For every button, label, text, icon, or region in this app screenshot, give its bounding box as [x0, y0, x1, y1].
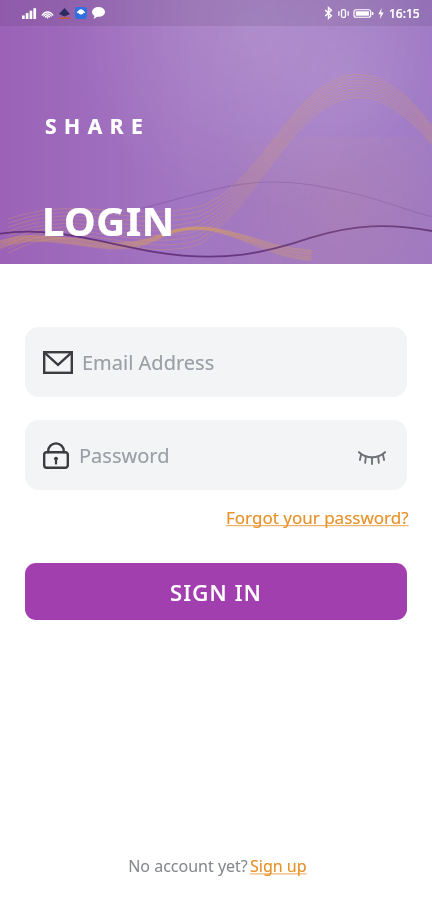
- button[interactable]: Sign up: [250, 855, 307, 877]
- staticText: Password: [79, 442, 170, 469]
- staticText: Forgot your password?: [226, 506, 409, 529]
- staticText: 16:15: [389, 5, 420, 21]
- button[interactable]: Email Address: [25, 327, 407, 397]
- staticText: SHARE: [45, 112, 151, 141]
- staticText: Email Address: [82, 349, 215, 376]
- staticText: LOGIN: [42, 193, 175, 247]
- staticText: Sign up: [250, 855, 307, 877]
- staticText: No account yet?: [126, 855, 250, 877]
- button[interactable]: Forgot your password?: [226, 506, 409, 529]
- button[interactable]: Password: [25, 420, 407, 490]
- button[interactable]: Show password: [355, 438, 389, 472]
- button[interactable]: SIGN IN: [25, 563, 407, 620]
- staticText: SIGN IN: [170, 577, 262, 607]
